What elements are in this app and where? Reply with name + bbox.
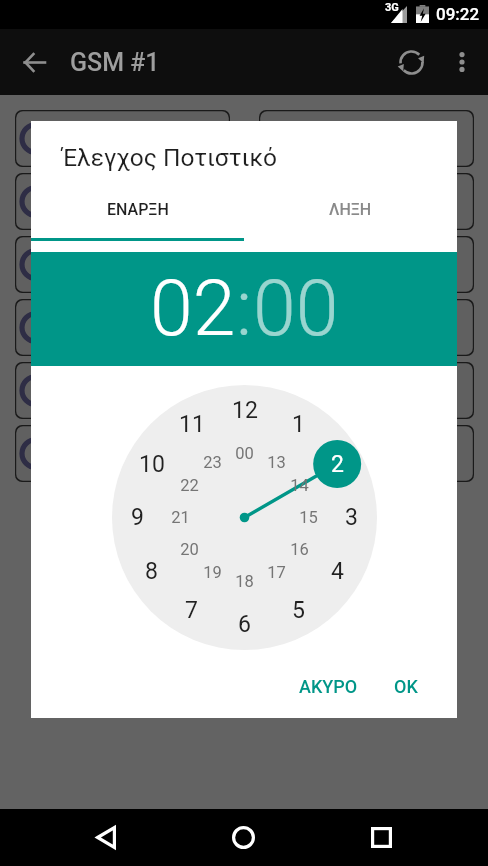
staticText: 17	[267, 563, 286, 582]
button[interactable]	[259, 110, 474, 167]
staticText: 19	[203, 563, 222, 582]
button[interactable]: Back	[78, 809, 134, 866]
staticText: 00	[253, 264, 339, 354]
staticText: 09:22	[436, 4, 480, 24]
staticText: 7	[185, 597, 198, 624]
button[interactable]	[15, 425, 230, 482]
button[interactable]: OK	[380, 666, 432, 707]
staticText: 02	[150, 264, 236, 354]
button[interactable]: ΑΚΥΡΟ	[285, 666, 372, 707]
staticText: 4	[331, 558, 344, 585]
staticText: 9	[131, 504, 144, 531]
button[interactable]	[259, 425, 474, 482]
button[interactable]	[259, 173, 474, 230]
staticText: 15	[299, 508, 318, 527]
button[interactable]	[259, 236, 474, 293]
staticText: :	[236, 264, 253, 354]
button[interactable]	[15, 236, 230, 293]
staticText: ΑΚΥΡΟ	[299, 676, 358, 697]
staticText: 1	[292, 411, 305, 438]
button[interactable]: ΛΗΞΗ	[244, 188, 457, 238]
staticText: 23	[203, 453, 222, 472]
staticText: OK	[394, 676, 418, 697]
button[interactable]: Home	[215, 809, 271, 866]
staticText: 16	[290, 540, 309, 559]
staticText: 21	[171, 508, 190, 527]
button[interactable]: Recent apps	[353, 809, 409, 866]
button[interactable]: Navigate up	[0, 29, 68, 95]
staticText: 20	[180, 540, 199, 559]
button[interactable]: ΕΝΑΡΞΗ	[31, 188, 244, 238]
staticText: Έλεγχος Ποτιστικό	[62, 143, 278, 172]
button[interactable]	[259, 362, 474, 419]
staticText: 11	[179, 411, 205, 438]
staticText: 00	[235, 444, 254, 463]
button[interactable]	[15, 110, 230, 167]
staticText: 13	[267, 453, 286, 472]
staticText: 12	[232, 397, 258, 424]
button[interactable]	[259, 299, 474, 356]
button[interactable]: More options	[439, 29, 485, 95]
button[interactable]	[15, 299, 230, 356]
button[interactable]	[15, 362, 230, 419]
staticText: 22	[180, 476, 199, 495]
staticText: 2	[331, 451, 344, 478]
staticText: 8	[145, 558, 158, 585]
staticText: 3	[345, 504, 358, 531]
button[interactable]: Refresh	[383, 29, 439, 95]
staticText: GSM #1	[70, 48, 160, 77]
staticText: 5	[292, 597, 305, 624]
staticText: 10	[139, 451, 165, 478]
staticText: 18	[235, 572, 254, 591]
staticText: 14	[290, 476, 309, 495]
staticText: ΕΝΑΡΞΗ	[107, 200, 169, 219]
staticText: 6	[238, 611, 251, 638]
button[interactable]	[15, 173, 230, 230]
staticText: ΛΗΞΗ	[329, 200, 372, 219]
staticText: 3G	[385, 1, 399, 14]
